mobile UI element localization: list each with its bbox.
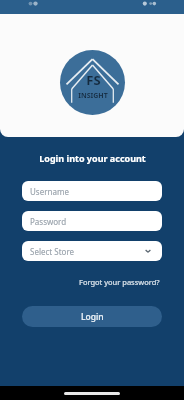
staticText: Login into your account [39, 152, 146, 164]
staticText: Forgot your password? [79, 277, 160, 287]
button[interactable]: Username [22, 181, 162, 201]
staticText: Username [30, 186, 69, 197]
staticText: INSIGHT [78, 91, 108, 101]
button[interactable]: Select Store [22, 241, 162, 261]
button[interactable]: Login [22, 306, 162, 327]
staticText: Login [81, 311, 104, 323]
staticText: Select Store [30, 246, 75, 257]
button[interactable]: Forgot your password? [77, 275, 162, 289]
button[interactable]: Password [22, 211, 162, 231]
staticText: FS [86, 71, 101, 89]
staticText: Password [30, 216, 67, 227]
